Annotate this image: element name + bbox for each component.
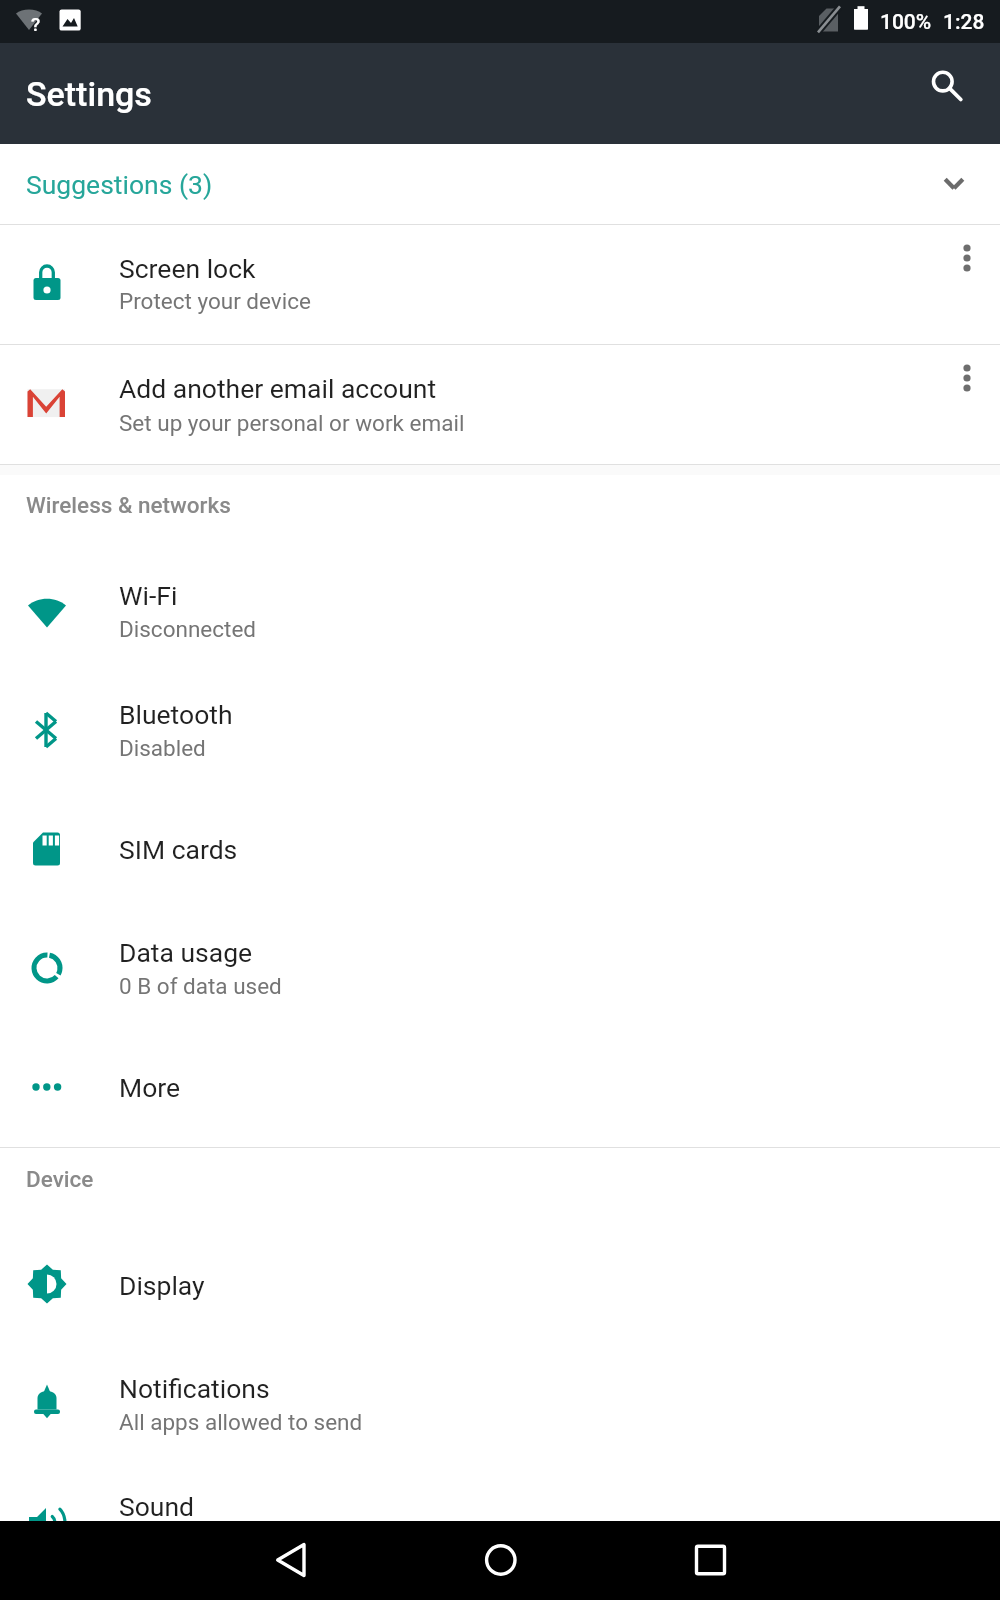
button[interactable]: SIM cards	[0, 778, 1000, 903]
button[interactable]: Recent apps	[681, 1530, 741, 1590]
staticText: Bluetooth	[119, 699, 233, 730]
staticText: Wi-Fi	[119, 580, 178, 611]
button[interactable]: Sound	[0, 1460, 1000, 1521]
staticText: Protect your device	[119, 288, 311, 314]
staticText: Settings	[26, 74, 152, 114]
button[interactable]: More options	[943, 354, 991, 402]
button[interactable]: Display	[0, 1200, 1000, 1342]
button[interactable]: Bluetooth	[0, 653, 1000, 778]
staticText: Data usage	[119, 937, 253, 968]
button[interactable]: Collapse suggestions	[930, 160, 978, 208]
staticText: Set up your personal or work email	[119, 410, 465, 436]
staticText: Notifications	[119, 1373, 270, 1404]
staticText: Sound	[119, 1491, 195, 1522]
button[interactable]: Wi-Fi	[0, 475, 1000, 653]
staticText: Display	[119, 1270, 205, 1301]
staticText: SIM cards	[119, 834, 238, 865]
button[interactable]: Data usage	[0, 903, 1000, 1026]
staticText: Device	[26, 1166, 94, 1192]
button[interactable]: Notifications	[0, 1342, 1000, 1460]
staticText: Disconnected	[119, 616, 256, 642]
button[interactable]: Add another email account	[0, 345, 1000, 464]
staticText: 1:28	[943, 10, 985, 35]
staticText: Screen lock	[119, 253, 256, 284]
button[interactable]: Back	[261, 1530, 321, 1590]
button[interactable]: More options	[943, 234, 991, 282]
staticText: More	[119, 1072, 181, 1103]
staticText: Disabled	[119, 735, 206, 761]
button[interactable]: Screen lock	[0, 225, 1000, 344]
button[interactable]: Suggestions (3)	[0, 144, 1000, 224]
button[interactable]: Home	[471, 1530, 531, 1590]
button[interactable]: Search	[914, 52, 974, 112]
staticText: Add another email account	[119, 373, 437, 404]
staticText: ?	[31, 13, 41, 35]
staticText: All apps allowed to send	[119, 1409, 363, 1435]
staticText: Suggestions (3)	[26, 169, 213, 200]
staticText: 100%	[880, 10, 932, 35]
staticText: 0 B of data used	[119, 973, 282, 999]
button[interactable]: More	[0, 1026, 1000, 1147]
staticText: Wireless & networks	[26, 492, 231, 518]
